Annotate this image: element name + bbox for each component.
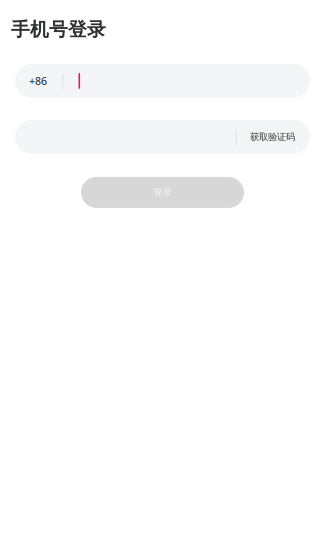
staticText: 获取验证码 bbox=[250, 131, 295, 143]
staticText: 登录 bbox=[153, 187, 171, 198]
button[interactable]: 获取验证码 bbox=[237, 120, 310, 154]
staticText: +86 bbox=[29, 74, 47, 88]
button[interactable]: 手机号 bbox=[15, 64, 310, 98]
button[interactable]: 登录 bbox=[81, 177, 244, 208]
staticText: 手机号登录 bbox=[11, 18, 106, 41]
